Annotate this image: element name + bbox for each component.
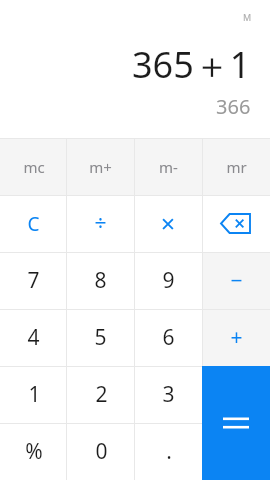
staticText: ✕ — [160, 213, 176, 235]
staticText: − — [230, 266, 243, 295]
staticText: . — [166, 437, 172, 466]
staticText: 365＋1 — [132, 40, 251, 89]
staticText: mc — [23, 157, 45, 177]
button[interactable]: % — [0, 423, 68, 480]
button[interactable]: 7 — [0, 252, 67, 309]
button[interactable]: Backspace — [202, 195, 270, 252]
button[interactable]: 4 — [0, 309, 67, 366]
staticText: 1 — [28, 380, 41, 409]
button[interactable]: m+ — [67, 138, 134, 195]
staticText: 8 — [94, 266, 107, 295]
button[interactable]: C — [0, 195, 67, 252]
button[interactable]: 8 — [67, 252, 134, 309]
staticText: + — [230, 323, 243, 352]
button[interactable]: mr — [202, 138, 270, 195]
staticText: 2 — [95, 380, 108, 409]
button[interactable]: m- — [134, 138, 202, 195]
button[interactable]: mc — [0, 138, 67, 195]
button[interactable]: Equals — [202, 366, 270, 480]
staticText: 7 — [27, 266, 40, 295]
button[interactable]: 9 — [134, 252, 202, 309]
button[interactable]: − — [202, 252, 270, 309]
button[interactable]: ÷ — [67, 195, 134, 252]
staticText: 4 — [27, 323, 40, 352]
button[interactable]: 1 — [0, 366, 68, 423]
button[interactable]: 2 — [68, 366, 135, 423]
staticText: ÷ — [94, 209, 107, 238]
staticText: 5 — [94, 323, 107, 352]
staticText: M — [243, 11, 252, 23]
staticText: m- — [159, 157, 178, 177]
button[interactable]: + — [202, 309, 270, 366]
staticText: 366 — [216, 93, 251, 120]
staticText: m+ — [89, 157, 112, 177]
staticText: % — [25, 437, 43, 466]
button[interactable]: 3 — [135, 366, 202, 423]
staticText: C — [27, 211, 40, 237]
button[interactable]: 6 — [134, 309, 202, 366]
staticText: 9 — [162, 266, 175, 295]
button[interactable]: 0 — [68, 423, 135, 480]
button[interactable]: 5 — [67, 309, 134, 366]
staticText: 6 — [162, 323, 175, 352]
staticText: 0 — [95, 437, 108, 466]
button[interactable]: . — [135, 423, 202, 480]
staticText: mr — [226, 157, 247, 177]
staticText: 3 — [162, 380, 175, 409]
button[interactable]: ✕ — [134, 195, 202, 252]
